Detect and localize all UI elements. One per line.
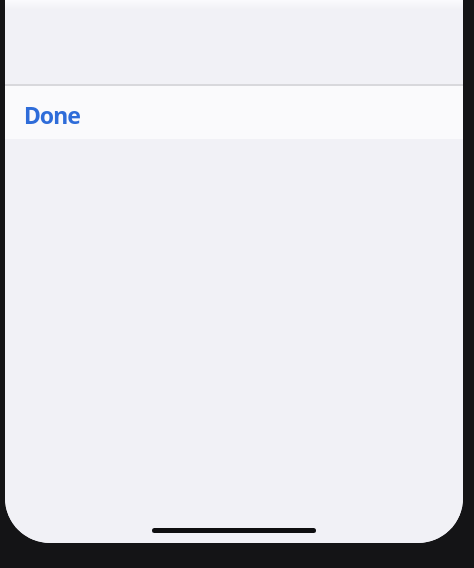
staticText: Done [24, 99, 80, 130]
button[interactable]: Done [5, 86, 463, 139]
